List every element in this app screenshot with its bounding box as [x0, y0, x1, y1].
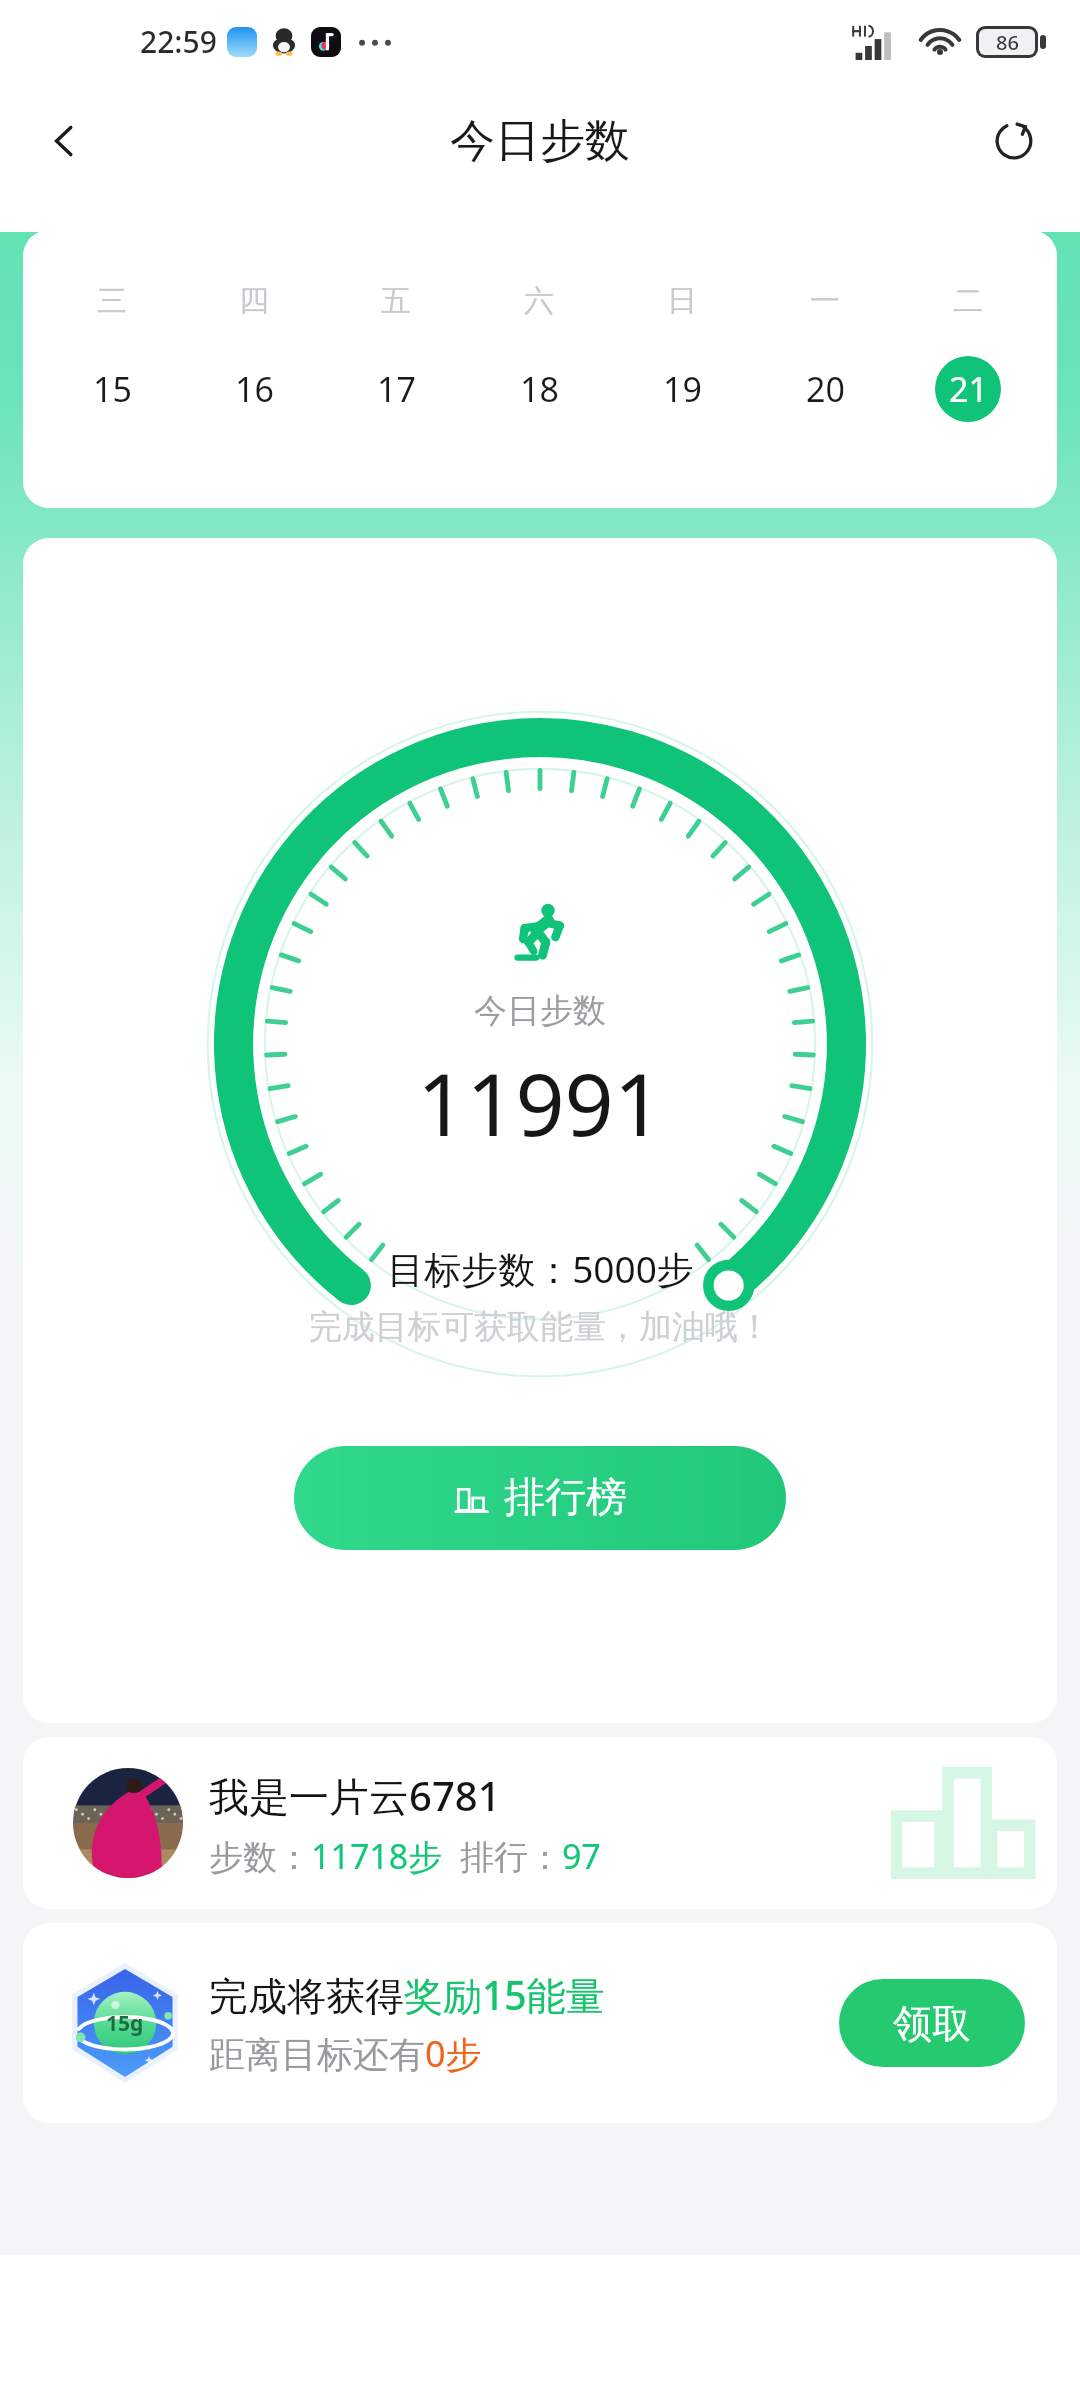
staticText: 三 — [97, 282, 127, 320]
button[interactable]: 排行榜 — [294, 1446, 786, 1550]
staticText: 15 — [93, 366, 132, 412]
button[interactable]: Back — [26, 103, 102, 179]
staticText: 86 — [996, 29, 1019, 55]
staticText: 领取 — [893, 1999, 971, 2048]
staticText: 一 — [810, 282, 840, 320]
button[interactable]: 五 — [325, 230, 467, 508]
button[interactable]: Refresh — [976, 103, 1052, 179]
staticText: 五 — [381, 282, 411, 320]
staticText: 18 — [520, 366, 559, 412]
staticText: 二 — [953, 282, 983, 320]
staticText: 15g — [106, 2009, 144, 2038]
staticText: 四 — [239, 282, 269, 320]
staticText: 排行榜 — [504, 1472, 627, 1524]
staticText: 距离目标还有0步 — [209, 2029, 482, 2078]
staticText: 目标步数：5000步 — [387, 1243, 694, 1294]
staticText: 16 — [235, 366, 274, 412]
staticText: 今日步数 — [474, 990, 606, 1032]
staticText: 完成目标可获取能量，加油哦！ — [309, 1306, 771, 1348]
staticText: 22:59 — [140, 21, 217, 62]
staticText: 六 — [524, 282, 554, 320]
staticText: 19 — [663, 366, 702, 412]
button[interactable]: 三 — [41, 230, 183, 508]
button[interactable]: 领取 — [839, 1979, 1025, 2067]
staticText: 17 — [377, 366, 416, 412]
button[interactable]: 六 — [467, 230, 610, 508]
staticText: 今日步数 — [450, 113, 630, 170]
button[interactable]: 四 — [183, 230, 325, 508]
staticText: 完成将获得奖励15能量 — [209, 1968, 605, 2021]
button[interactable]: 日 — [610, 230, 753, 508]
staticText: 11991 — [417, 1044, 663, 1161]
staticText: 步数：11718步 排行：97 — [209, 1833, 601, 1879]
staticText: 我是一片云6781 — [209, 1768, 501, 1823]
button[interactable]: 一 — [753, 230, 896, 508]
staticText: 21 — [949, 366, 988, 412]
button[interactable]: 我是一片云6781 — [23, 1737, 1057, 1909]
button[interactable]: 二 — [896, 230, 1039, 508]
staticText: 20 — [806, 366, 845, 412]
staticText: 日 — [667, 282, 697, 320]
